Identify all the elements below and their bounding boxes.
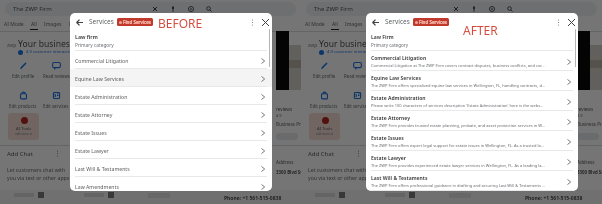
staticText: Business Profile	[577, 121, 602, 127]
staticText: Address	[276, 159, 294, 165]
staticText: you via text or other apps	[308, 174, 371, 181]
staticText: Please write 100 characters of services …	[371, 103, 544, 108]
staticText: 4.9	[577, 113, 583, 118]
staticText: 4.9 customer interactions	[26, 49, 77, 55]
staticText: Read reviews	[43, 73, 70, 79]
staticText: Primary category	[75, 42, 114, 49]
staticText: Law Firm	[371, 34, 394, 41]
staticText: Estate Lawyer	[371, 155, 407, 162]
button[interactable]: Close	[566, 17, 576, 27]
staticText: The ZWP Firm provides trusted estate pla…	[371, 123, 545, 128]
button[interactable]: Estate Administration	[366, 91, 578, 111]
staticText: Estate Administration	[371, 95, 426, 102]
staticText: Edit profile	[12, 73, 35, 79]
staticText: Edit products	[9, 103, 37, 109]
button[interactable]: Last Will & Testaments	[70, 159, 272, 177]
button[interactable]: Law firm	[70, 30, 272, 51]
staticText: add some ai	[15, 132, 33, 136]
staticText: Services	[385, 17, 410, 26]
staticText: News	[69, 21, 82, 28]
button[interactable]: Edit profile	[308, 61, 340, 79]
staticText: AI Mode	[305, 21, 325, 28]
staticText: Images	[345, 21, 363, 28]
staticText: The ZWP Firm	[13, 5, 52, 13]
button[interactable]: Edit products	[308, 91, 340, 109]
staticText: All	[31, 21, 37, 28]
staticText: Estate Issues	[75, 129, 107, 136]
button[interactable]: More options	[248, 18, 257, 27]
staticText: Commercial Litigation at The ZWP Firm co…	[371, 63, 545, 68]
staticText: AFTER	[463, 22, 498, 38]
staticText: 4.9	[276, 113, 282, 118]
button[interactable]: Law Amendments	[70, 177, 272, 191]
button[interactable]: Estate Attorney	[70, 105, 272, 123]
staticText: Read reviews	[344, 73, 371, 79]
staticText: Your business on	[319, 38, 388, 50]
staticText: Last Will & Testaments	[371, 175, 428, 182]
staticText: Equine Law Services	[371, 75, 422, 82]
staticText: Equine Law Services	[75, 75, 124, 82]
button[interactable]: Last Will & Testaments	[366, 171, 578, 191]
staticText: Last Will & Testaments	[75, 165, 130, 172]
staticText: Services	[89, 17, 114, 26]
staticText: Commercial Litigation	[75, 57, 129, 64]
staticText: reviews	[276, 106, 293, 112]
button[interactable]: Law Firm	[366, 30, 578, 51]
button[interactable]: Back	[369, 16, 381, 28]
button[interactable]: Edit services	[341, 91, 373, 109]
staticText: Commercial Litigation	[371, 55, 427, 62]
button[interactable]: Read reviews	[40, 61, 72, 79]
staticText: The ZWP Firm provides experienced estate…	[371, 163, 545, 168]
button[interactable]: Estate Attorney	[366, 111, 578, 131]
staticText: Edit services	[344, 103, 370, 109]
button[interactable]: Commercial Litigation	[366, 51, 578, 71]
button[interactable]: Commercial Litigation	[70, 51, 272, 69]
staticText: Add Chat	[308, 150, 334, 158]
staticText: Phone: +1 561-515-0838	[525, 195, 583, 202]
staticText: All	[332, 21, 338, 28]
staticText: zwp	[308, 42, 318, 49]
staticText: Find Services	[419, 19, 447, 25]
button[interactable]: Edit services	[40, 91, 72, 109]
staticText: News	[370, 21, 383, 28]
staticText: Let customers chat with	[7, 166, 66, 173]
button[interactable]: Edit products	[7, 91, 39, 109]
staticText: Edit services	[43, 103, 69, 109]
staticText: Edit products	[310, 103, 338, 109]
button[interactable]: Estate Issues	[366, 131, 578, 151]
staticText: Estate Attorney	[371, 115, 411, 122]
staticText: zwp	[7, 42, 17, 49]
button[interactable]: Estate Lawyer	[70, 141, 272, 159]
staticText: Edit profile	[313, 73, 336, 79]
staticText: Estate Issues	[371, 135, 404, 142]
staticText: Law firm	[75, 33, 98, 40]
button[interactable]: Equine Law Services	[366, 71, 578, 91]
button[interactable]: Read reviews	[341, 61, 373, 79]
button[interactable]: Estate Administration	[70, 87, 272, 105]
staticText: Estate Administration	[75, 93, 128, 100]
staticText: The ZWP Firm	[314, 5, 353, 13]
staticText: AI Tools	[317, 126, 333, 132]
button[interactable]: Edit profile	[7, 61, 39, 79]
staticText: Primary category	[371, 42, 409, 48]
staticText: Estate Lawyer	[75, 147, 109, 154]
button[interactable]: Back	[73, 16, 85, 28]
staticText: The ZWP Firm offers expert legal support…	[371, 143, 544, 148]
button[interactable]: Close	[260, 17, 270, 27]
button[interactable]: Estate Lawyer	[366, 151, 578, 171]
staticText: 3300 Blvd Suite N	[577, 169, 602, 175]
staticText: add some ai	[316, 132, 334, 136]
staticText: reviews	[577, 106, 594, 112]
staticText: The ZWP Firm offers specialized equine l…	[371, 83, 546, 88]
staticText: Estate Attorney	[75, 111, 113, 118]
staticText: Your business on	[18, 38, 87, 50]
staticText: AI Mode	[4, 21, 24, 28]
button[interactable]: Equine Law Services	[70, 69, 272, 87]
button[interactable]: More options	[554, 18, 563, 27]
button[interactable]: Estate Issues	[70, 123, 272, 141]
staticText: Find Services	[123, 19, 151, 25]
staticText: you via text or other apps	[7, 174, 70, 181]
staticText: The ZWP Firm offers professional guidanc…	[371, 183, 546, 188]
staticText: Add Chat	[7, 150, 33, 158]
staticText: BEFORE	[158, 15, 203, 31]
